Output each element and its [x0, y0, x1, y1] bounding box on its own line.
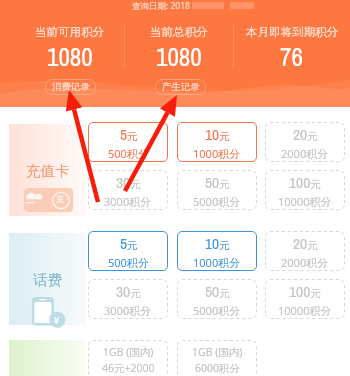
staticText: 查询日期: 2018 — [132, 0, 190, 12]
staticText: 30元 — [116, 281, 141, 302]
staticText: 产生记录 — [162, 81, 200, 93]
button[interactable]: 1GB (国内) — [88, 340, 168, 376]
staticText: 1000积分 — [193, 255, 241, 270]
staticText: 30元 — [116, 172, 141, 193]
button[interactable]: 100元 — [265, 279, 345, 319]
staticText: 1080 — [156, 40, 202, 69]
staticText: 500积分 — [108, 255, 149, 270]
staticText: 1080 — [47, 40, 93, 69]
staticText: 10元 — [205, 233, 230, 254]
staticText: 5000积分 — [193, 303, 241, 318]
staticText: 话费 — [33, 271, 62, 289]
staticText: 3000积分 — [104, 303, 152, 318]
staticText: 2000积分 — [281, 146, 329, 161]
button[interactable]: 10元 — [177, 231, 257, 271]
staticText: 1GB (国内) — [192, 345, 243, 359]
button[interactable]: 1GB (国内) — [177, 340, 257, 376]
button[interactable]: 5元 — [88, 122, 168, 162]
staticText: 76 — [280, 40, 303, 69]
staticText: 10元 — [205, 124, 230, 145]
staticText: 5000积分 — [193, 194, 241, 209]
staticText: 46元+2000 — [102, 361, 155, 375]
other: 话费 — [24, 297, 73, 327]
staticText: 消费记录 — [52, 81, 90, 93]
staticText: 100元 — [289, 172, 321, 193]
staticText: 500积分 — [108, 146, 149, 161]
staticText: 50元 — [205, 172, 230, 193]
staticText: 3000积分 — [104, 194, 152, 209]
button[interactable]: 30元 — [88, 279, 168, 319]
button[interactable]: 消费记录 — [45, 79, 96, 95]
button[interactable]: 50元 — [177, 170, 257, 210]
staticText: 本月即将到期积分 — [246, 25, 338, 39]
staticText: 100元 — [289, 281, 321, 302]
staticText: 5元 — [120, 124, 138, 145]
button[interactable]: 充值卡 — [9, 124, 86, 216]
staticText: 5元 — [120, 233, 138, 254]
staticText: 1000积分 — [193, 146, 241, 161]
staticText: 当前可用积分 — [35, 25, 104, 39]
staticText: 10000积分 — [278, 303, 332, 318]
staticText: 6000积分 — [195, 361, 241, 375]
button[interactable]: 20元 — [265, 122, 345, 162]
staticText: ¥ — [54, 314, 60, 326]
staticText: 20元 — [293, 233, 318, 254]
button[interactable]: 话费 — [9, 233, 86, 325]
button[interactable]: 10元 — [177, 122, 257, 162]
staticText: 1GB (国内) — [103, 345, 154, 359]
staticText: 2000积分 — [281, 255, 329, 270]
button[interactable]: 50元 — [177, 279, 257, 319]
button[interactable]: 20元 — [265, 231, 345, 271]
staticText: 充值卡 — [26, 162, 70, 180]
staticText: 当前总积分 — [150, 25, 208, 39]
staticText: 50元 — [205, 281, 230, 302]
staticText: 20元 — [293, 124, 318, 145]
button[interactable]: 流量 — [9, 340, 86, 376]
button[interactable]: 100元 — [265, 170, 345, 210]
button[interactable]: 产生记录 — [155, 79, 206, 95]
staticText: 充 — [56, 194, 64, 204]
button[interactable]: 5元 — [88, 231, 168, 271]
other: 充值卡 — [24, 188, 73, 212]
button[interactable]: 30元 — [88, 170, 168, 210]
staticText: 10000积分 — [278, 194, 332, 209]
